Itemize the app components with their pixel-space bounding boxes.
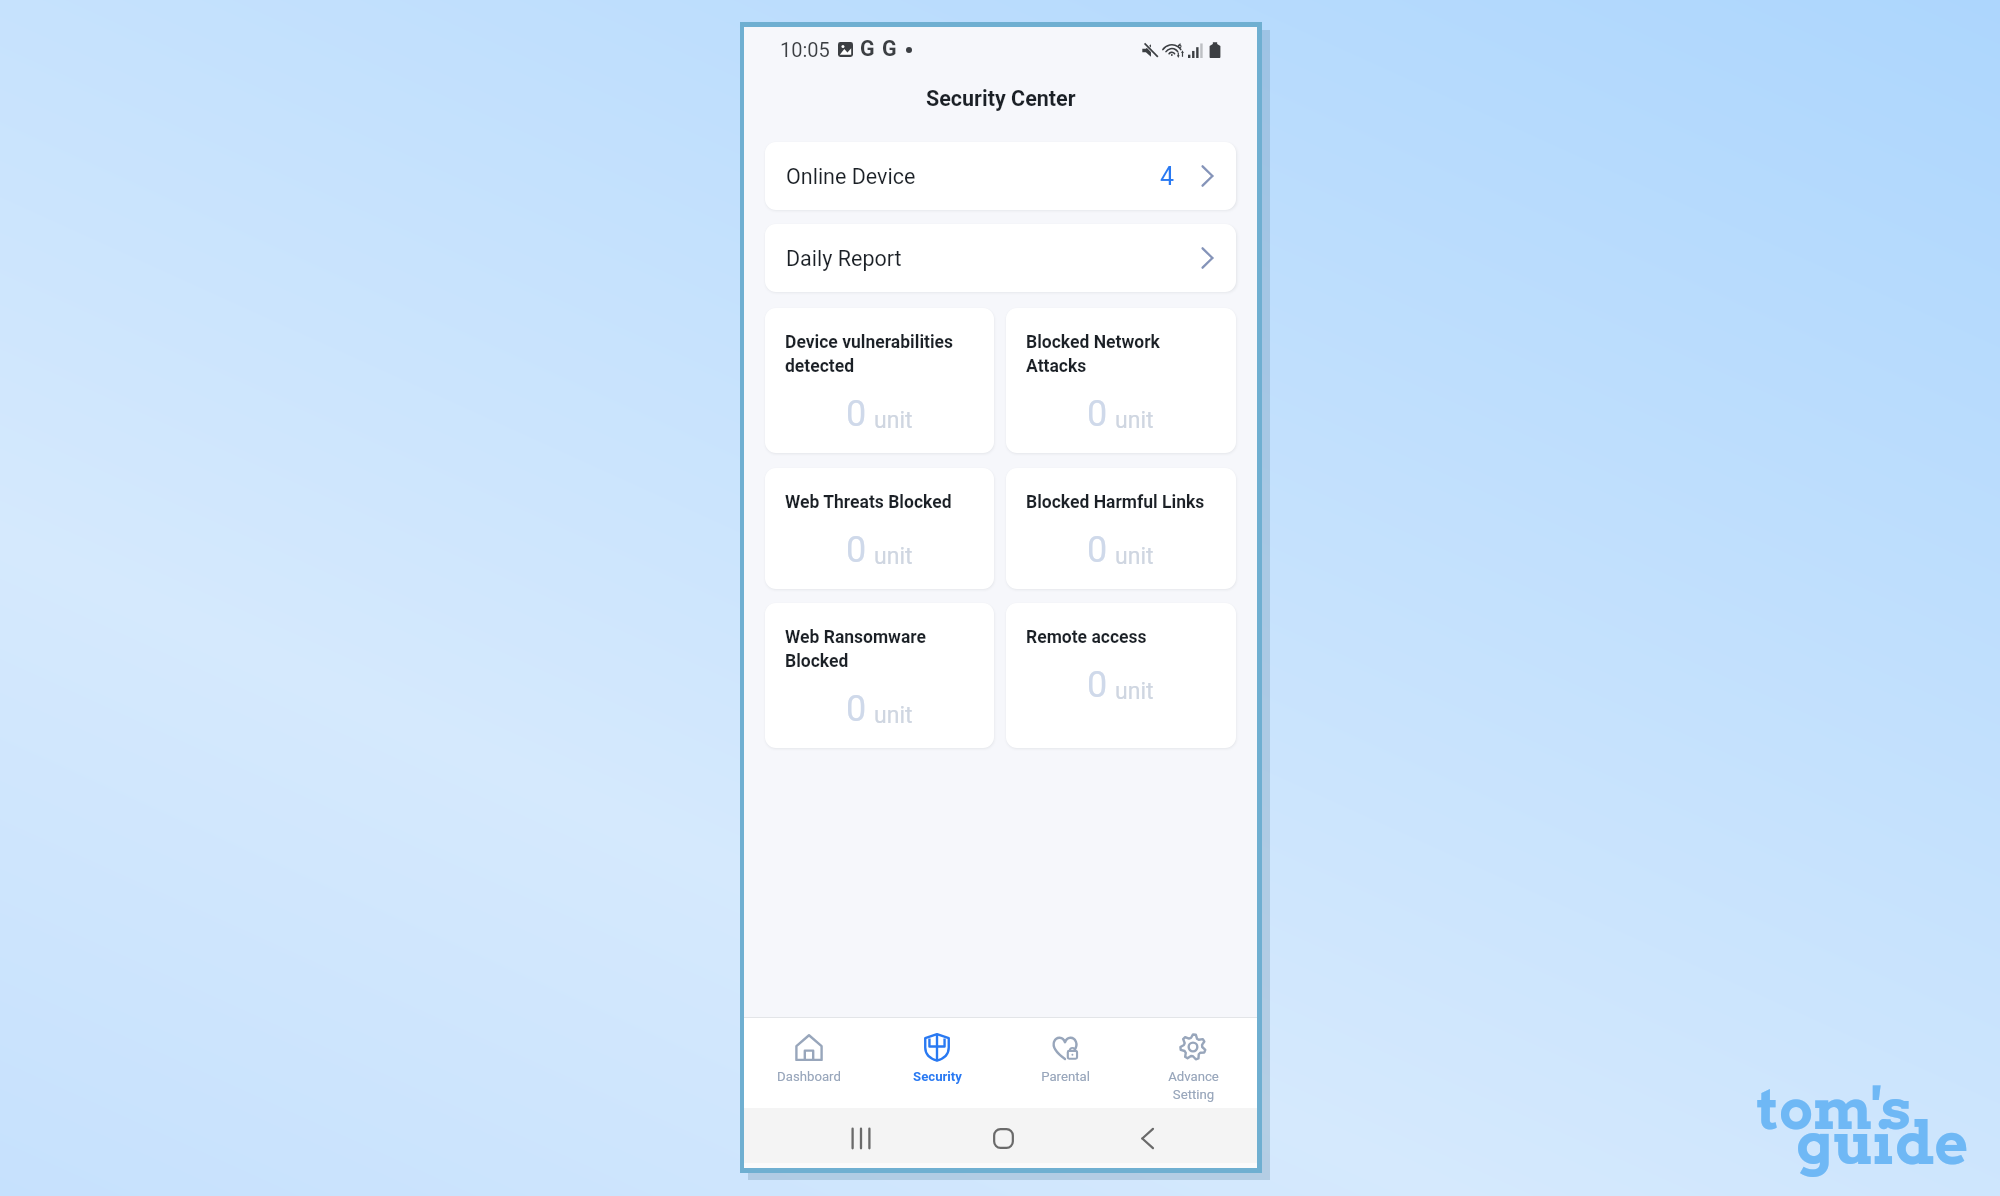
staticText: Blocked Network Attacks <box>1026 332 1224 377</box>
staticText: Security <box>913 1069 962 1084</box>
staticText: G <box>860 36 875 61</box>
staticText: unit <box>1115 543 1154 570</box>
staticText: 0 <box>846 688 867 730</box>
staticText: Advance Setting <box>1168 1069 1219 1102</box>
staticText: unit <box>1115 678 1154 705</box>
button[interactable]: Blocked Harmful Links <box>1006 468 1236 589</box>
staticText: Web Ransomware Blocked <box>785 627 982 672</box>
button[interactable]: Parental <box>1001 1017 1129 1108</box>
other: Parental <box>1051 1033 1079 1061</box>
staticText: unit <box>874 543 913 570</box>
staticText: 0 <box>846 393 867 435</box>
staticText: Blocked Harmful Links <box>1026 492 1205 513</box>
staticText: 0 <box>846 529 867 571</box>
button[interactable]: Dashboard <box>744 1017 873 1108</box>
staticText: tom's <box>1757 1075 1912 1143</box>
other: Advance Setting <box>1179 1033 1207 1061</box>
staticText: Dashboard <box>777 1069 841 1084</box>
staticText: Daily Report <box>786 246 902 271</box>
button[interactable]: Security <box>873 1017 1001 1108</box>
other: Home <box>993 1128 1014 1149</box>
button[interactable]: Device vulnerabilities detected <box>765 308 994 453</box>
staticText: Security Center <box>926 86 1076 111</box>
other: Security <box>923 1033 951 1061</box>
staticText: Parental <box>1041 1069 1090 1084</box>
other: Recents <box>851 1128 871 1149</box>
staticText: 0 <box>1087 393 1108 435</box>
staticText: Web Threats Blocked <box>785 492 952 513</box>
staticText: Online Device <box>786 164 916 189</box>
staticText: Remote access <box>1026 627 1147 648</box>
staticText: 10:05 <box>780 38 830 61</box>
staticText: 0 <box>1087 664 1108 706</box>
staticText: guide <box>1796 1108 1969 1178</box>
staticText: 4 <box>1160 162 1175 191</box>
button[interactable]: Blocked Network Attacks <box>1006 308 1236 453</box>
staticText: unit <box>874 702 913 729</box>
staticText: unit <box>1115 407 1154 434</box>
button[interactable]: Web Ransomware Blocked <box>765 603 994 748</box>
staticText: unit <box>874 407 913 434</box>
button[interactable]: Web Threats Blocked <box>765 468 994 589</box>
other: Dashboard <box>795 1033 823 1061</box>
other: Back <box>1141 1128 1154 1149</box>
button[interactable]: Online Device <box>765 142 1236 210</box>
staticText: G <box>882 36 897 61</box>
button[interactable]: Remote access <box>1006 603 1236 748</box>
staticText: 0 <box>1087 529 1108 571</box>
button[interactable]: Advance Setting <box>1129 1017 1257 1108</box>
button[interactable]: Daily Report <box>765 224 1236 292</box>
staticText: Device vulnerabilities detected <box>785 332 982 377</box>
